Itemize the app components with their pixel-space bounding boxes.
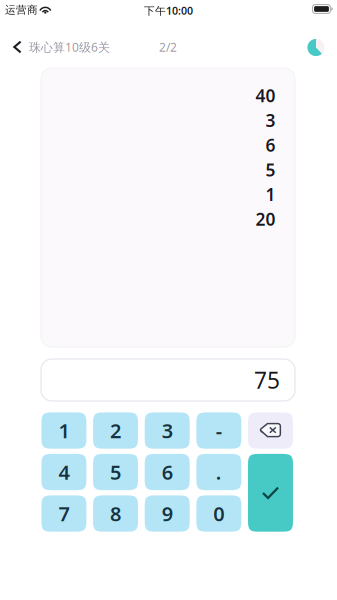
button[interactable]: 0 (196, 495, 241, 532)
button[interactable]: 8 (93, 495, 138, 532)
button[interactable]: 2 (93, 412, 138, 449)
button[interactable]: - (196, 412, 241, 449)
staticText: 40 (255, 84, 275, 107)
button[interactable]: Progress (0, 31, 34, 63)
staticText: 下午10:00 (144, 3, 193, 18)
staticText: 6 (265, 133, 275, 156)
button[interactable]: 2/2 (0, 31, 42, 63)
staticText: 9 (162, 500, 173, 527)
staticText: 3 (162, 417, 173, 444)
staticText: 5 (265, 158, 275, 181)
staticText: 4 (58, 459, 69, 485)
button[interactable]: 3 (145, 412, 190, 449)
staticText: 珠心算10级6关 (29, 39, 110, 55)
staticText: 7 (58, 500, 69, 527)
button[interactable]: 9 (145, 495, 190, 532)
staticText: 8 (110, 500, 121, 527)
staticText: 2/2 (159, 39, 177, 55)
staticText: 5 (110, 459, 121, 485)
staticText: 1 (265, 183, 275, 206)
staticText: - (216, 417, 222, 444)
staticText: . (216, 459, 222, 485)
button[interactable]: 1 (41, 412, 86, 449)
staticText: 2 (110, 417, 121, 444)
button[interactable]: Delete (248, 412, 293, 449)
staticText: 1 (58, 417, 69, 444)
button[interactable]: 珠心算10级6关 (0, 31, 120, 63)
staticText: 75 (254, 365, 280, 395)
staticText: 运营商 (5, 3, 38, 17)
button[interactable]: 7 (41, 495, 86, 532)
button[interactable]: 4 (41, 454, 86, 490)
button[interactable]: 6 (145, 454, 190, 490)
staticText: 3 (265, 109, 275, 132)
staticText: 6 (162, 459, 173, 485)
button[interactable]: 5 (93, 454, 138, 490)
button[interactable]: Submit (248, 454, 293, 532)
staticText: 20 (255, 208, 275, 231)
button[interactable]: . (196, 454, 241, 490)
staticText: 0 (213, 500, 224, 527)
